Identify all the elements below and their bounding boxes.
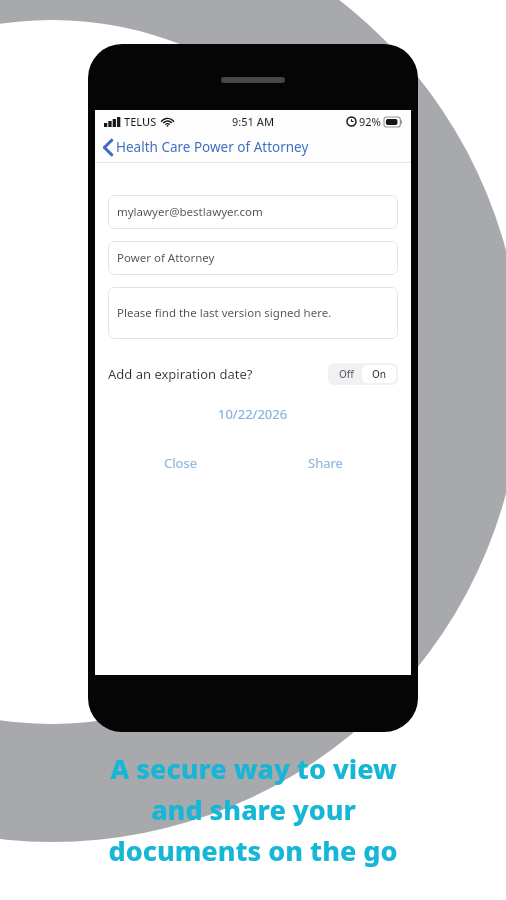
staticText: mylawyer@bestlawyer.com xyxy=(117,204,263,220)
button[interactable]: mylawyer@bestlawyer.com xyxy=(108,195,398,229)
staticText: Off xyxy=(339,367,354,381)
staticText: and share your xyxy=(151,791,356,828)
button[interactable]: On xyxy=(362,365,396,383)
button[interactable]: 10/22/2026 xyxy=(108,405,398,423)
staticText: TELUS xyxy=(124,114,157,129)
staticText: Share xyxy=(308,454,343,472)
staticText: Add an expiration date? xyxy=(108,365,253,383)
button[interactable]: Share xyxy=(253,449,398,477)
staticText: documents on the go xyxy=(108,832,398,869)
button[interactable]: Please find the last version signed here… xyxy=(108,287,398,339)
button[interactable]: Off xyxy=(330,365,362,383)
staticText: On xyxy=(372,367,387,381)
staticText: A secure way to view xyxy=(110,750,397,787)
staticText: 92% xyxy=(359,114,381,129)
staticText: Power of Attorney xyxy=(117,250,215,266)
staticText: 10/22/2026 xyxy=(218,405,288,423)
staticText: 9:51 AM xyxy=(232,114,275,129)
button[interactable]: Power of Attorney xyxy=(108,241,398,275)
button[interactable]: Close xyxy=(108,449,253,477)
staticText: Health Care Power of Attorney xyxy=(116,138,309,156)
staticText: Close xyxy=(164,454,197,472)
staticText: Please find the last version signed here… xyxy=(117,305,332,321)
button[interactable]: Back xyxy=(95,134,313,160)
